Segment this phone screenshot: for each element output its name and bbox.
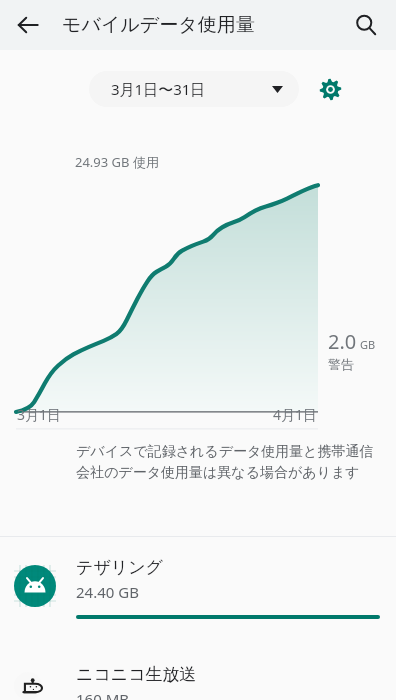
button[interactable]: 戻る — [8, 5, 48, 45]
button[interactable]: 検索 — [346, 5, 386, 45]
staticText: 3月1日〜31日 — [111, 79, 206, 99]
staticText: 警告 — [328, 356, 354, 372]
button[interactable]: ニコニコ生放送 — [0, 637, 396, 700]
button[interactable]: データ使用量の設定 — [309, 68, 351, 110]
staticText: 3月1日 — [17, 405, 62, 424]
button[interactable]: 3月1日〜31日 — [89, 71, 299, 107]
staticText: 160 MB — [76, 689, 129, 700]
staticText: GB — [360, 337, 376, 352]
staticText: 4月1日 — [273, 405, 318, 424]
button[interactable]: テザリング — [0, 537, 396, 637]
staticText: モバイルデータ使用量 — [62, 13, 255, 37]
staticText: テザリング — [76, 557, 163, 578]
staticText: 2.0 — [328, 328, 357, 355]
staticText: 24.93 GB 使用 — [75, 153, 159, 171]
staticText: ニコニコ生放送 — [76, 664, 197, 685]
staticText: デバイスで記録されるデータ使用量と携帯通信会社のデータ使用量は異なる場合がありま… — [76, 443, 374, 481]
staticText: 24.40 GB — [76, 582, 139, 602]
